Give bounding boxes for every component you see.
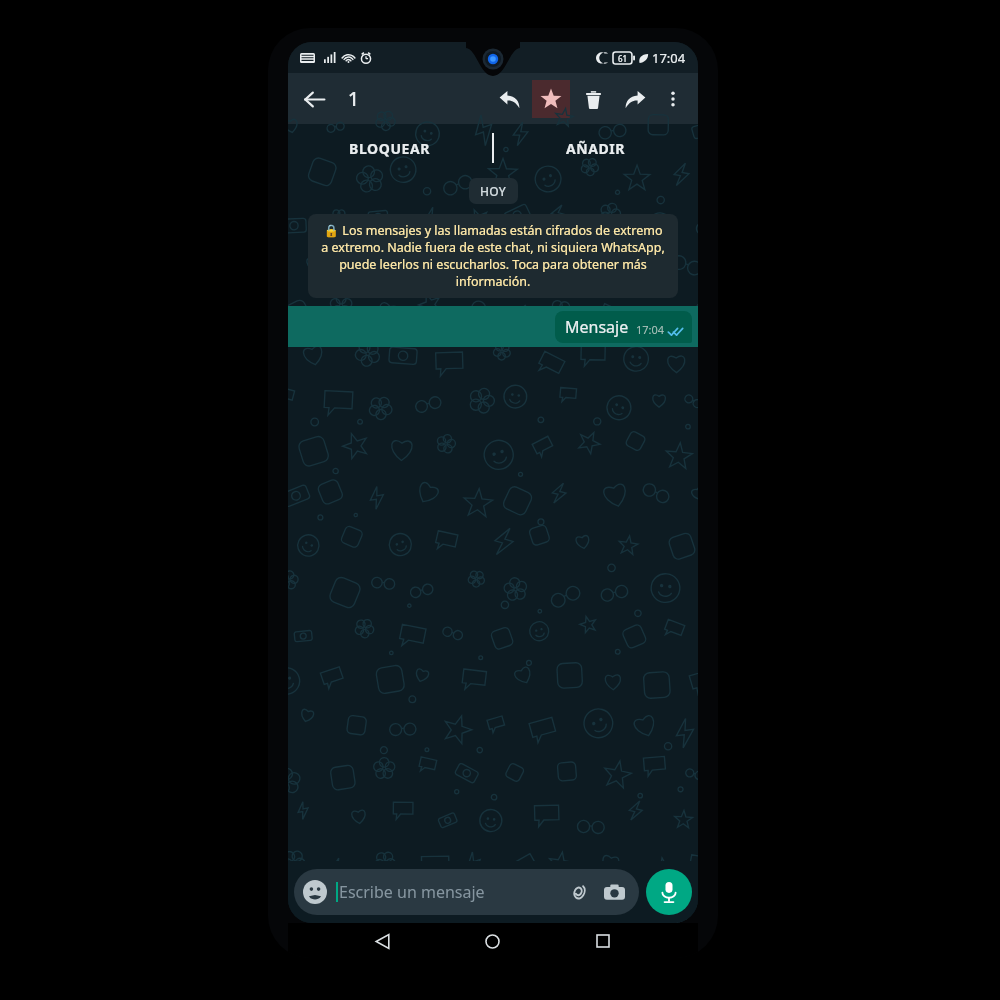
other: Emoji <box>303 880 327 904</box>
button[interactable]: Mensaje <box>288 306 698 347</box>
button[interactable]: Recent apps <box>587 925 619 957</box>
staticText: Mensaje <box>565 316 629 338</box>
button[interactable]: Forward <box>616 80 654 118</box>
button[interactable]: 🔒 Los mensajes y las llamadas están cifr… <box>308 214 678 298</box>
button[interactable]: Reply <box>490 80 528 118</box>
button[interactable]: Voice message <box>646 869 692 915</box>
staticText: Escribe un mensaje <box>339 881 485 903</box>
button[interactable]: BLOQUEAR <box>288 124 492 172</box>
button[interactable]: More options <box>654 80 692 118</box>
staticText: HOY <box>480 183 507 199</box>
button[interactable]: Star <box>532 80 570 118</box>
staticText: 17:04 <box>636 322 665 337</box>
button[interactable]: Emoji <box>294 869 639 915</box>
staticText: 🔒 Los mensajes y las llamadas están cifr… <box>320 222 666 290</box>
button[interactable]: Camera <box>597 875 631 909</box>
staticText: 1 <box>348 86 359 112</box>
button[interactable]: AÑADIR <box>494 124 698 172</box>
staticText: 17:04 <box>652 49 686 67</box>
staticText: 61 <box>618 53 628 64</box>
button[interactable]: Attach <box>561 875 595 909</box>
button[interactable]: Home <box>476 925 508 957</box>
staticText: AÑADIR <box>566 139 626 158</box>
button[interactable]: Back <box>366 925 398 957</box>
button[interactable]: Delete <box>574 80 612 118</box>
staticText: BLOQUEAR <box>349 139 431 158</box>
button[interactable]: Back <box>294 79 334 119</box>
